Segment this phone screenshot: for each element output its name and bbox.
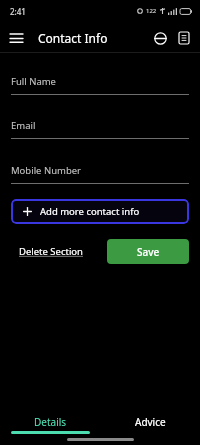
staticText: 122 [146, 7, 157, 15]
staticText: 2:41 [10, 6, 26, 17]
button[interactable]: Scan [148, 26, 172, 50]
staticText: Contact Info [38, 30, 108, 46]
staticText: Save [137, 245, 160, 259]
staticText: Full Name [11, 75, 56, 88]
button[interactable]: Menu [5, 27, 27, 49]
staticText: Mobile Number [11, 164, 82, 177]
button[interactable]: Delete Section [19, 245, 83, 258]
button[interactable]: Save [107, 239, 189, 264]
staticText: Advice [135, 415, 166, 429]
button[interactable]: Details [0, 409, 100, 445]
button[interactable]: Document [172, 26, 196, 50]
staticText: Add more contact info [40, 205, 140, 218]
button[interactable]: Add more contact info [11, 199, 189, 224]
staticText: Delete Section [19, 245, 83, 258]
staticText: Email [11, 119, 36, 132]
staticText: Details [34, 415, 67, 429]
button[interactable]: Advice [100, 409, 200, 445]
